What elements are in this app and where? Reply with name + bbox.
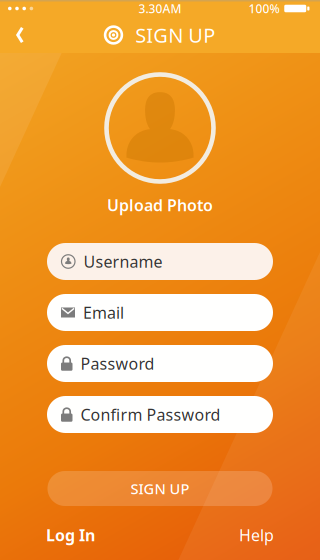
staticText: Upload Photo <box>107 194 213 216</box>
button[interactable]: Password <box>47 345 273 382</box>
button[interactable]: Back <box>0 17 40 53</box>
button[interactable]: Username <box>47 243 273 280</box>
button[interactable]: Upload Photo <box>104 72 216 184</box>
button[interactable]: SIGN UP <box>47 471 272 506</box>
staticText: 100% <box>248 0 279 16</box>
staticText: Email <box>83 302 124 323</box>
button[interactable]: Log In <box>46 524 95 546</box>
staticText: Help <box>239 524 274 546</box>
button[interactable]: Help <box>239 524 274 546</box>
staticText: 3.30AM <box>138 0 181 16</box>
staticText: Username <box>83 251 162 272</box>
button[interactable]: Upload Photo <box>90 196 230 214</box>
staticText: SIGN UP <box>130 479 189 498</box>
staticText: SIGN UP <box>135 22 215 48</box>
staticText: Password <box>80 353 154 374</box>
staticText: Confirm Password <box>80 404 220 425</box>
button[interactable]: Confirm Password <box>47 396 273 433</box>
button[interactable]: Email <box>47 294 273 331</box>
staticText: Log In <box>46 524 95 546</box>
